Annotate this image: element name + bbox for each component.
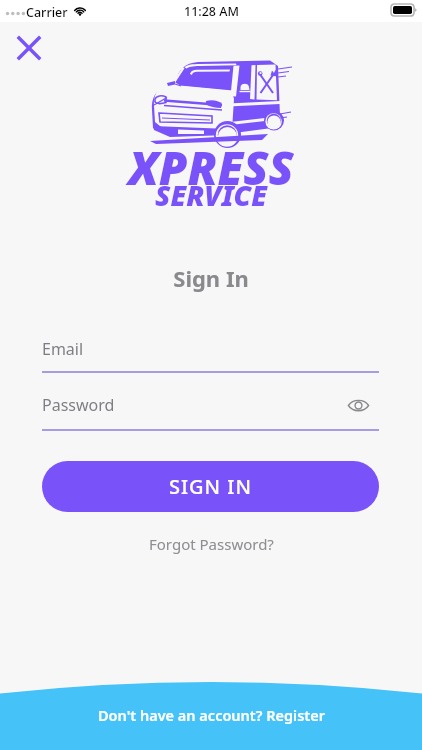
staticText: Carrier xyxy=(26,4,68,21)
staticText: Don't have an account? Register xyxy=(98,705,325,725)
staticText: 11:28 AM xyxy=(184,3,239,20)
staticText: Password xyxy=(42,394,115,416)
button[interactable]: Forgot Password? xyxy=(145,530,278,558)
button[interactable]: Don't have an account? Register xyxy=(0,699,422,731)
button[interactable]: Show password xyxy=(343,390,373,420)
staticText: Sign In xyxy=(0,263,422,293)
button[interactable]: Close xyxy=(10,29,48,67)
staticText: Email xyxy=(42,338,84,360)
button[interactable]: SIGN IN xyxy=(42,461,379,512)
staticText: SIGN IN xyxy=(169,473,252,500)
staticText: SERVICE xyxy=(0,176,422,214)
staticText: XPRESS xyxy=(0,136,422,199)
